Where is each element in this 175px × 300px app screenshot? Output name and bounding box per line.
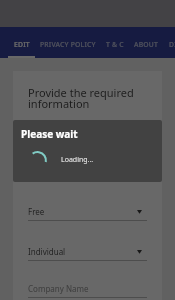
staticText: Provide the required information xyxy=(28,85,147,111)
other: Expand xyxy=(137,208,142,216)
other: Expand xyxy=(137,248,142,256)
staticText: ABOUT xyxy=(134,40,159,49)
staticText: Please wait xyxy=(21,127,78,141)
staticText: PRIVACY POLICY xyxy=(40,40,96,49)
button[interactable]: DISCLAIMER xyxy=(164,30,175,59)
staticText: Individual xyxy=(28,246,137,257)
staticText: Company Name xyxy=(28,283,89,294)
staticText: Loading... xyxy=(61,155,94,165)
button[interactable]: PRIVACY POLICY xyxy=(35,30,101,59)
staticText: EDIT xyxy=(14,40,30,49)
button[interactable]: T & C xyxy=(101,30,129,59)
button[interactable]: Free xyxy=(28,206,147,221)
button[interactable]: ABOUT xyxy=(129,30,164,59)
staticText: Free xyxy=(28,206,137,217)
staticText: T & C xyxy=(106,40,124,49)
staticText: DISCLAIMER xyxy=(169,40,175,49)
button[interactable]: EDIT xyxy=(9,30,35,59)
button[interactable]: Individual xyxy=(28,246,147,261)
button[interactable]: Company Name xyxy=(28,283,147,298)
